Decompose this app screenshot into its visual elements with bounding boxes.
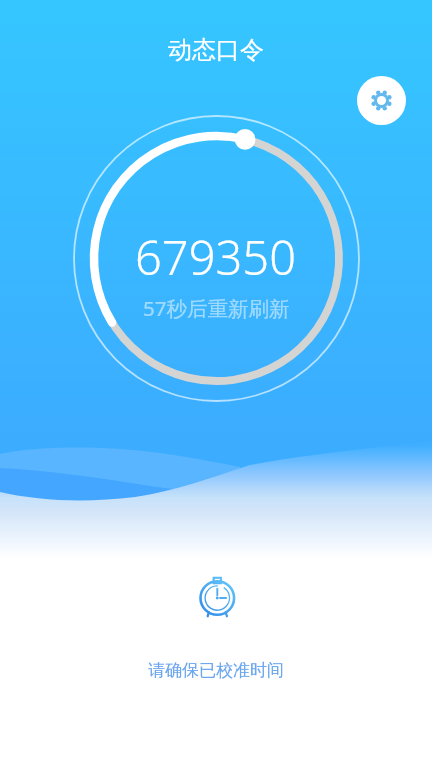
staticText: 679350 (135, 225, 297, 289)
staticText: 请确保已校准时间 (148, 660, 284, 681)
staticText: 动态口令 (168, 35, 264, 65)
staticText: 57秒后重新刷新 (143, 294, 290, 322)
button[interactable]: Settings (357, 76, 406, 125)
